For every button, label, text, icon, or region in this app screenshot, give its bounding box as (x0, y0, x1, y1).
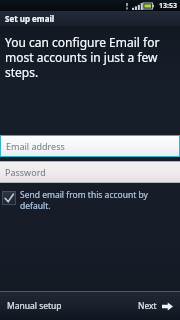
staticText: Password (5, 166, 46, 178)
other: Send email from this account by default (2, 191, 16, 205)
staticText: Next (138, 300, 157, 312)
staticText: Manual setup (7, 300, 62, 312)
staticText: Email address (6, 140, 65, 152)
button[interactable]: Manual setup (0, 292, 128, 320)
button[interactable]: Send email from this account by default (2, 189, 174, 211)
staticText: You can configure Email for most account… (5, 34, 175, 80)
button[interactable]: Email address (1, 136, 179, 156)
staticText: Send email from this account by default. (20, 189, 174, 211)
other: Next (162, 302, 173, 311)
staticText: Set up email (5, 13, 55, 24)
staticText: 13:53 (159, 1, 177, 11)
button[interactable]: Password (0, 162, 180, 182)
button[interactable]: Next (128, 292, 180, 320)
